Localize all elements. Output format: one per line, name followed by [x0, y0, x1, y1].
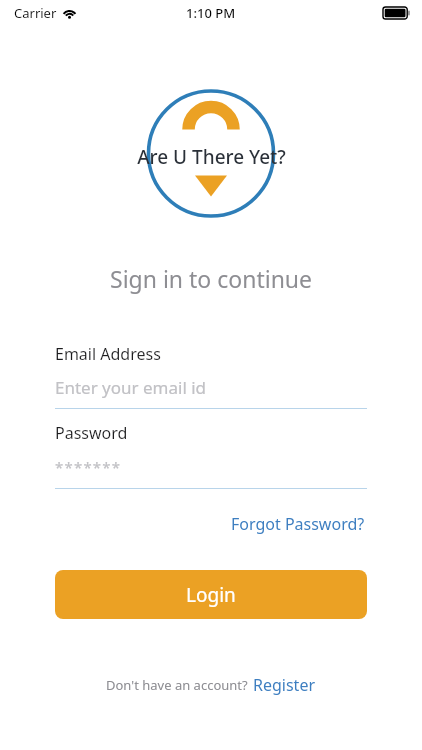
button[interactable]: Register — [253, 671, 316, 699]
button[interactable]: Login — [55, 570, 367, 619]
staticText: Login — [186, 582, 236, 608]
staticText: Forgot Password? — [231, 513, 365, 535]
staticText: Register — [253, 674, 316, 696]
staticText: Carrier — [14, 4, 57, 22]
staticText: Sign in to continue — [110, 263, 313, 294]
button[interactable]: Enter your email id — [55, 376, 367, 399]
other: Wi-Fi signal — [62, 8, 77, 19]
staticText: Password — [55, 422, 128, 444]
staticText: Don't have an account? — [106, 676, 248, 694]
other: Battery full — [383, 7, 410, 19]
button[interactable]: Forgot Password? — [229, 509, 367, 539]
button[interactable]: ******* — [55, 457, 367, 477]
staticText: Are U There Yet? — [137, 144, 286, 170]
staticText: 1:10 PM — [186, 4, 236, 22]
staticText: Email Address — [55, 343, 161, 365]
